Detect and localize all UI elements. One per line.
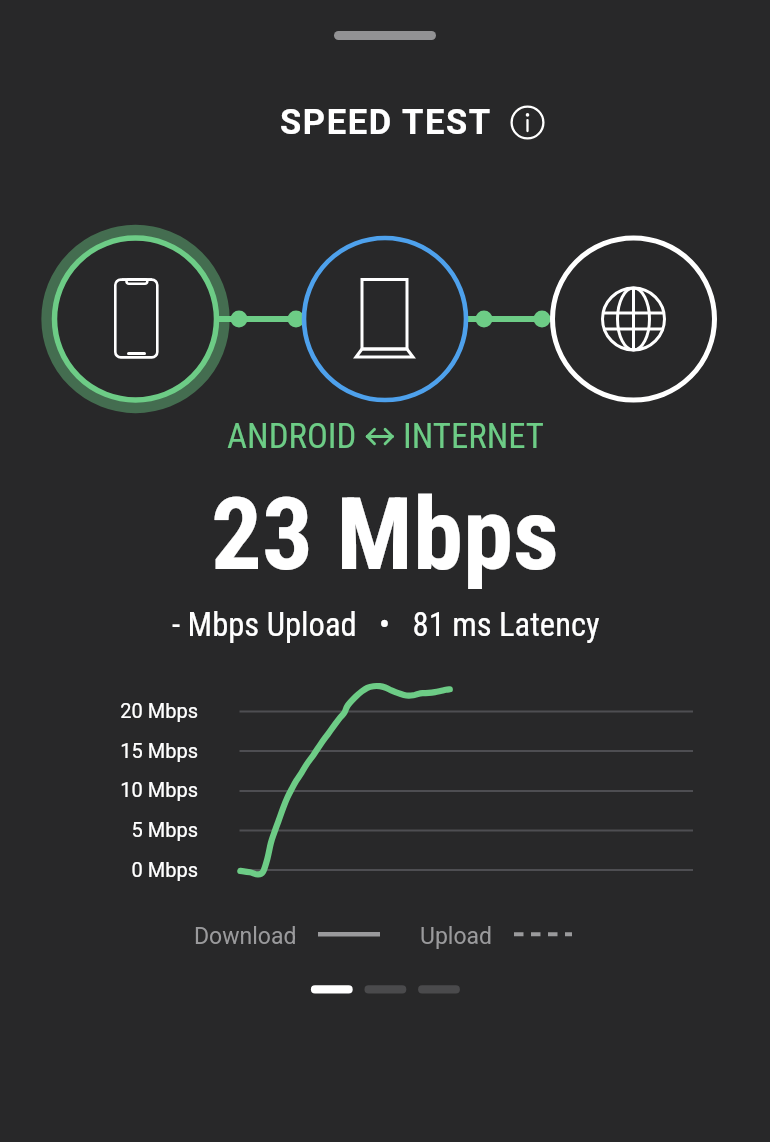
staticText: SPEED TEST <box>280 102 492 142</box>
button[interactable]: Internet <box>547 233 719 405</box>
button[interactable]: Page 3 <box>414 977 464 1002</box>
staticText: Download <box>194 923 297 950</box>
staticText: 0 Mbps <box>78 858 198 881</box>
staticText: 10 Mbps <box>78 778 198 801</box>
staticText: - Mbps Upload • 81 ms Latency <box>172 606 600 644</box>
button[interactable]: Drag handle <box>310 14 460 56</box>
staticText: 5 Mbps <box>78 818 198 841</box>
button[interactable]: This device <box>39 223 232 416</box>
staticText: 23 Mbps <box>211 475 559 593</box>
staticText: INTERNET <box>403 416 544 457</box>
button[interactable]: Info <box>509 104 546 141</box>
button[interactable]: Page 2 <box>361 977 411 1002</box>
staticText: Upload <box>420 923 493 950</box>
staticText: 20 Mbps <box>78 699 198 722</box>
button[interactable]: Page 1 <box>307 977 357 1002</box>
staticText: 15 Mbps <box>78 739 198 762</box>
staticText: ANDROID <box>227 416 357 457</box>
button[interactable]: Router <box>299 233 471 405</box>
